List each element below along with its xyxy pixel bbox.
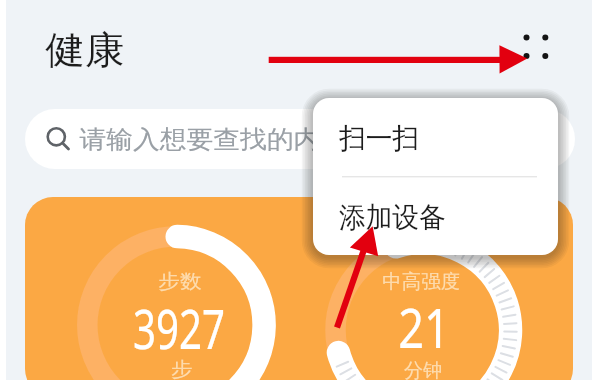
button[interactable]: More options — [504, 14, 560, 70]
button[interactable] — [25, 109, 575, 169]
button[interactable] — [25, 197, 573, 380]
button[interactable] — [313, 178, 558, 255]
button[interactable] — [313, 98, 558, 176]
button[interactable] — [44, 20, 138, 72]
